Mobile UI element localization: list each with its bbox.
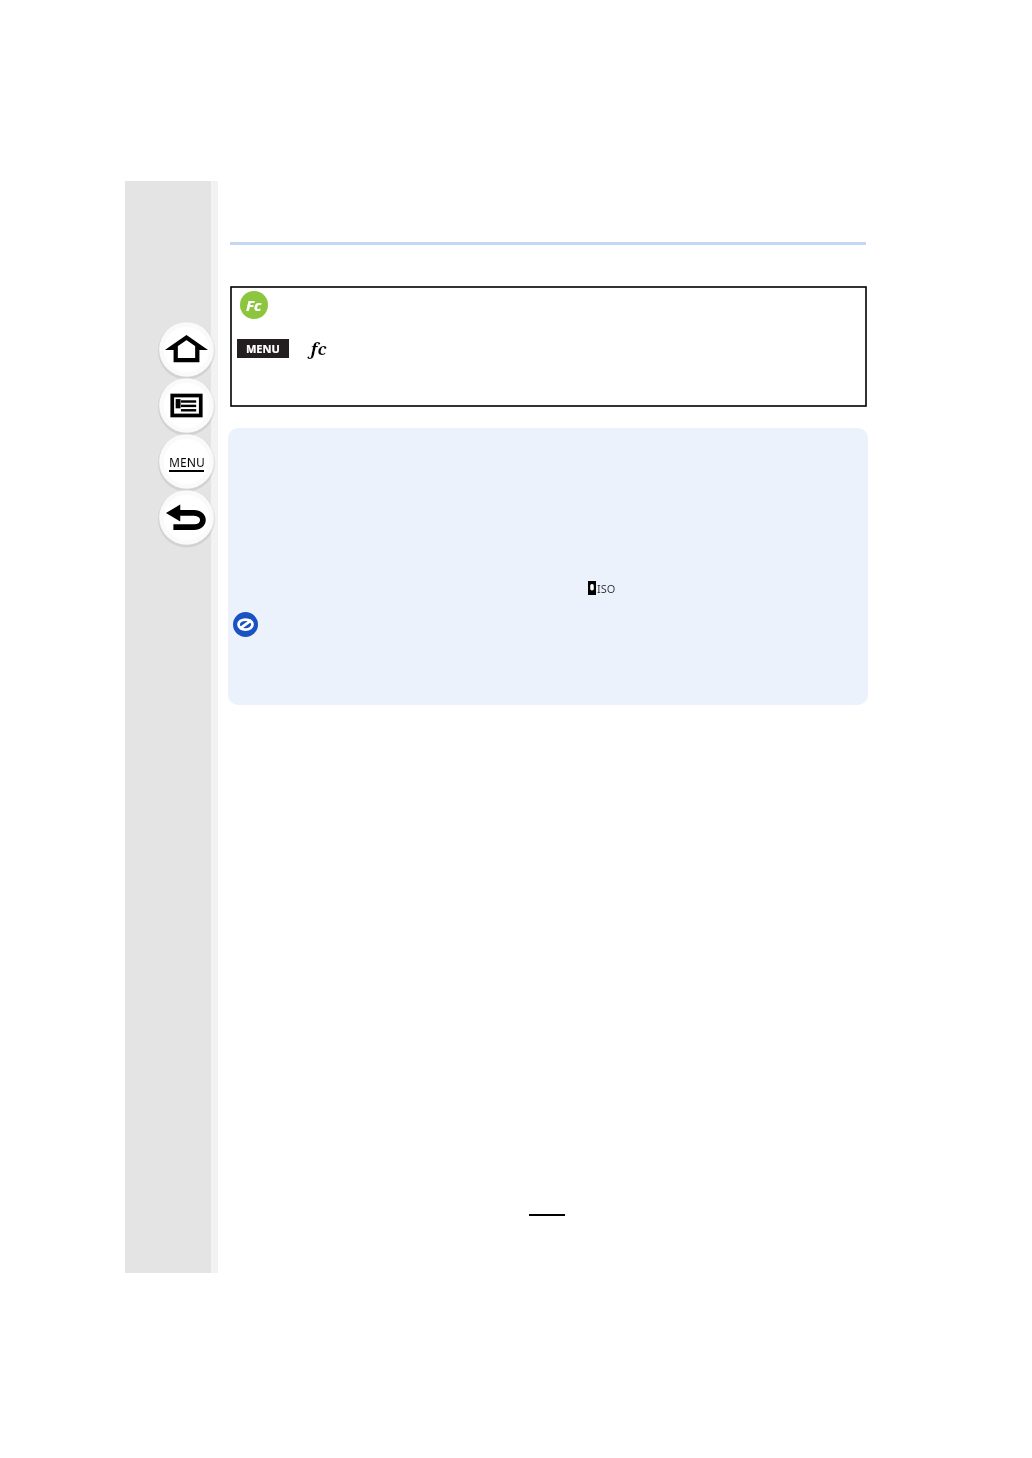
button[interactable]: Home xyxy=(158,321,215,378)
button[interactable]: Back xyxy=(158,489,215,546)
staticText: MENU xyxy=(169,454,205,470)
staticText: ƒc xyxy=(309,337,327,360)
button[interactable]: Contents xyxy=(158,377,215,434)
staticText: ISO xyxy=(597,581,616,596)
button[interactable]: Menu xyxy=(158,433,215,490)
staticText: MENU xyxy=(246,341,280,356)
staticText: Fc xyxy=(246,295,262,315)
